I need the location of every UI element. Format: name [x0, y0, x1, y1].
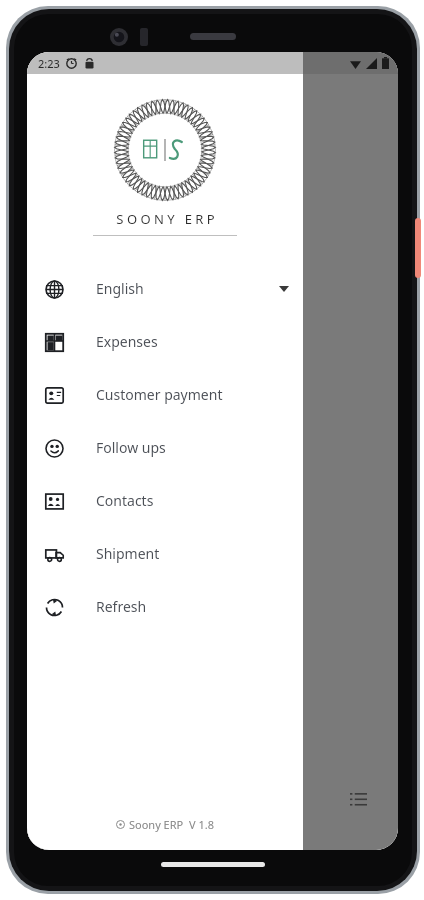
staticText: 2:23 — [38, 56, 60, 71]
staticText: Follow ups — [96, 438, 166, 457]
button[interactable]: Shipment — [27, 527, 303, 580]
button[interactable]: English — [27, 262, 303, 315]
staticText: Soony ERP V 1.8 — [129, 817, 214, 832]
staticText: Customer payment — [96, 385, 223, 404]
button[interactable]: List view — [346, 786, 370, 810]
staticText: Refresh — [96, 597, 147, 616]
button[interactable]: Refresh — [27, 580, 303, 633]
staticText: Total amount — [65, 192, 159, 212]
staticText: Contacts — [96, 491, 154, 510]
button[interactable]: Follow ups — [27, 421, 303, 474]
button[interactable]: Customer payment — [27, 368, 303, 421]
staticText: Sync — [286, 84, 317, 103]
staticText: Expenses — [96, 332, 158, 351]
button[interactable]: Expenses — [27, 315, 303, 368]
staticText: English — [96, 279, 144, 298]
button[interactable]: Contacts — [27, 474, 303, 527]
staticText: Shipment — [96, 544, 160, 563]
staticText: S O O N Y E R P — [116, 210, 215, 228]
